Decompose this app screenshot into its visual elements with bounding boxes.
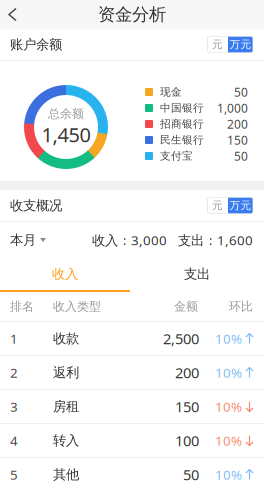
staticText: 1,000 <box>217 100 248 116</box>
staticText: 50 <box>234 84 248 100</box>
button[interactable]: 元 <box>207 36 228 52</box>
staticText: 10% <box>215 398 242 415</box>
staticText: 10% <box>215 364 242 381</box>
staticText: 资金分析 <box>98 4 166 25</box>
staticText: 中国银行 <box>160 101 204 114</box>
staticText: 5 <box>10 466 18 483</box>
staticText: 支出：1,600 <box>178 231 253 249</box>
staticText: 10% <box>215 330 242 347</box>
staticText: 收入 <box>52 266 78 282</box>
staticText: 房租 <box>53 398 79 415</box>
staticText: 支付宝 <box>160 149 193 162</box>
staticText: 总余额 <box>48 106 84 121</box>
button[interactable]: 本月 <box>10 222 46 257</box>
staticText: 150 <box>227 132 248 148</box>
staticText: 其他 <box>53 466 79 483</box>
staticText: 1,450 <box>41 121 90 148</box>
button[interactable]: 万元 <box>228 36 253 52</box>
button[interactable]: 万元 <box>228 197 253 213</box>
staticText: 1 <box>10 330 18 347</box>
staticText: 元 <box>212 199 223 212</box>
button[interactable]: 1 <box>0 322 264 356</box>
staticText: 收支概况 <box>10 197 62 214</box>
button[interactable]: 2 <box>0 356 264 390</box>
staticText: 100 <box>175 431 199 450</box>
staticText: 环比 <box>229 299 253 314</box>
staticText: 民生银行 <box>160 133 204 146</box>
staticText: 200 <box>227 116 248 132</box>
staticText: 200 <box>175 363 199 382</box>
staticText: 元 <box>212 38 223 51</box>
staticText: 排名 <box>10 299 34 314</box>
button[interactable]: 5 <box>0 458 264 490</box>
staticText: 50 <box>183 465 199 484</box>
staticText: 10% <box>215 466 242 483</box>
button[interactable]: 支出 <box>130 258 264 292</box>
staticText: 金额 <box>174 299 198 314</box>
staticText: 4 <box>10 432 18 449</box>
button[interactable]: 收入 <box>0 258 130 292</box>
staticText: 现金 <box>160 85 182 98</box>
staticText: 返利 <box>53 364 79 381</box>
button[interactable]: 4 <box>0 424 264 458</box>
staticText: 转入 <box>53 432 79 449</box>
staticText: 收入：3,000 <box>92 231 167 249</box>
staticText: 收入类型 <box>53 299 101 314</box>
staticText: 招商银行 <box>160 117 204 130</box>
staticText: 10% <box>215 432 242 449</box>
button[interactable]: Back <box>0 0 30 29</box>
staticText: 万元 <box>229 199 251 212</box>
button[interactable]: 3 <box>0 390 264 424</box>
staticText: 支出 <box>184 266 210 282</box>
staticText: 收款 <box>53 330 79 347</box>
staticText: 本月 <box>10 232 36 248</box>
staticText: 50 <box>234 148 248 164</box>
staticText: 2,500 <box>163 329 199 348</box>
button[interactable]: 元 <box>207 197 228 213</box>
staticText: 2 <box>10 364 18 381</box>
staticText: 3 <box>10 398 18 415</box>
staticText: 150 <box>175 397 199 416</box>
staticText: 万元 <box>229 38 251 51</box>
staticText: 账户余额 <box>10 36 62 53</box>
